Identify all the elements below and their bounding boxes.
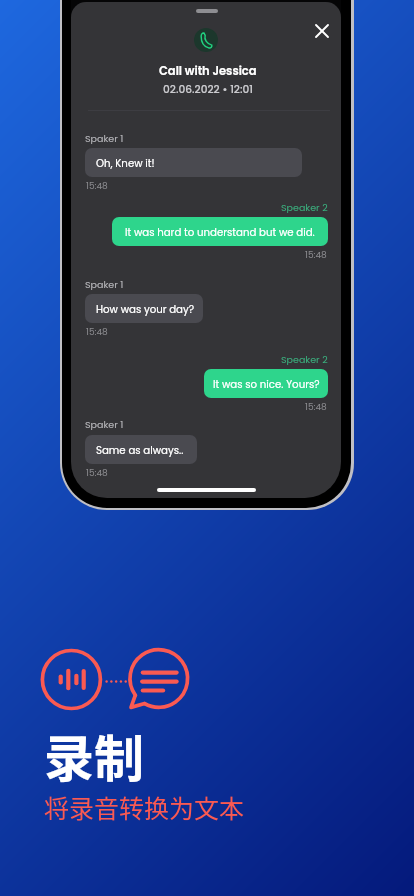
button[interactable]: How was your day? [85,294,203,323]
staticText: Oh, Knew it! [96,156,155,170]
staticText: 15:48 [86,467,108,480]
staticText: 15:48 [305,401,327,414]
staticText: Same as always.. [96,443,184,457]
button[interactable]: Same as always.. [85,435,197,464]
staticText: Speaker 2 [281,201,328,214]
staticText: Speaker 2 [281,353,328,366]
button[interactable]: It was hard to understand but we did. [112,217,328,246]
staticText: How was your day? [96,302,195,316]
staticText: 将录音转换为文本 [44,789,245,825]
staticText: Spaker 1 [85,278,124,291]
staticText: 15:48 [86,326,108,339]
staticText: Spaker 1 [85,418,124,431]
staticText: 录制 [44,719,144,791]
staticText: 02.06.2022 • 12:01 [163,82,254,97]
button[interactable]: Close [310,19,334,43]
staticText: Spaker 1 [85,132,124,145]
button[interactable]: Oh, Knew it! [85,148,302,177]
staticText: 15:48 [305,249,327,262]
staticText: Call with Jessica [159,63,257,79]
staticText: It was so nice. Yours? [213,377,320,391]
staticText: 15:48 [86,180,108,193]
button[interactable]: It was so nice. Yours? [204,369,328,398]
staticText: It was hard to understand but we did. [125,225,315,239]
